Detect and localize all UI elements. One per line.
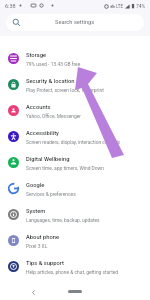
staticText: Screen time, app timers, Wind Down — [26, 165, 104, 171]
staticText: Services & preferences — [26, 191, 76, 197]
button[interactable]: Storage — [0, 45, 150, 71]
staticText: Storage — [26, 52, 47, 59]
staticText: Security & location — [26, 78, 75, 85]
staticText: Help articles, phone & chat, getting sta… — [26, 269, 119, 275]
staticText: About phone — [26, 234, 60, 241]
staticText: Google — [26, 182, 45, 189]
staticText: Digital Wellbeing — [26, 156, 70, 163]
staticText: Accounts — [26, 104, 51, 111]
staticText: Screen readers, display, interaction con… — [26, 139, 121, 145]
button[interactable]: Google — [0, 175, 150, 201]
button[interactable]: Security & location — [0, 71, 150, 97]
staticText: Languages, time, backup, updates — [26, 217, 100, 223]
staticText: 74% — [136, 3, 146, 9]
staticText: Search settings — [55, 19, 95, 26]
staticText: Play Protect, screen lock, fingerprint — [26, 87, 104, 93]
staticText: System — [26, 208, 46, 215]
button[interactable]: System — [0, 201, 150, 227]
button[interactable]: Back — [27, 286, 39, 298]
button[interactable]: Digital Wellbeing — [0, 149, 150, 175]
button[interactable]: Accessibility — [0, 123, 150, 149]
button[interactable]: Home — [68, 290, 82, 293]
staticText: Pixel 3 XL — [26, 243, 48, 249]
staticText: Accessibility — [26, 130, 59, 137]
staticText: 79% used - 13.43 GB free — [26, 61, 81, 67]
staticText: LTE — [116, 4, 124, 9]
button[interactable]: Tips & support — [0, 253, 150, 279]
staticText: Tips & support — [26, 260, 64, 267]
button[interactable]: Accounts — [0, 97, 150, 123]
staticText: Yahoo, Office, Messenger — [26, 113, 81, 119]
button[interactable]: About phone — [0, 227, 150, 253]
button[interactable]: Search settings — [6, 14, 144, 31]
staticText: 6:38 — [5, 3, 16, 9]
